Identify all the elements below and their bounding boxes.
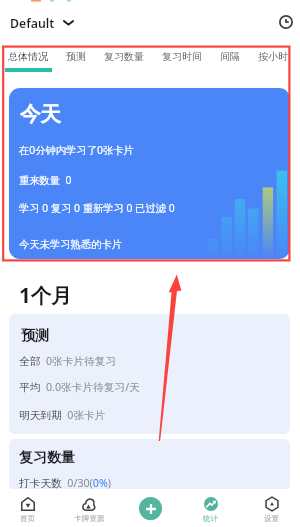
button[interactable]: Default <box>10 14 74 31</box>
staticText: 预测 <box>66 50 86 63</box>
staticText: 卡牌资源 <box>74 514 105 524</box>
button[interactable]: 今天 <box>9 88 290 259</box>
button[interactable]: 按小时分 <box>249 48 299 65</box>
staticText: 复习数量 <box>19 449 75 467</box>
button[interactable]: 统计 <box>182 491 240 525</box>
staticText: 间隔 <box>220 50 240 63</box>
staticText: 统计 <box>203 514 219 524</box>
staticText: Default <box>10 15 55 32</box>
staticText: 明天到期 0张卡片 <box>19 408 106 423</box>
button[interactable]: 首页 <box>0 491 57 525</box>
button[interactable]: 间隔 <box>211 48 249 65</box>
staticText: 重来数量 0 <box>19 173 72 187</box>
staticText: 全部 0张卡片待复习 <box>19 354 117 369</box>
button[interactable]: 预测 <box>9 314 290 434</box>
staticText: 在0分钟内学习了0张卡片 <box>19 143 134 157</box>
button[interactable]: 卡牌资源 <box>60 491 118 525</box>
staticText: 总体情况 <box>8 50 48 63</box>
staticText: 首页 <box>20 514 36 524</box>
staticText: 今天未学习熟悉的卡片 <box>19 238 122 251</box>
button[interactable]: History <box>275 11 297 33</box>
staticText: 复习数量 <box>104 50 144 63</box>
button[interactable]: 总体情况 <box>0 48 57 65</box>
button[interactable]: 复习数量 <box>9 439 290 491</box>
button[interactable]: 设置 <box>243 491 300 525</box>
staticText: 预测 <box>21 327 49 345</box>
button[interactable]: 预测 <box>57 48 95 65</box>
staticText: 复习时间 <box>162 50 202 63</box>
staticText: 平均 0.0张卡片待复习/天 <box>19 380 140 395</box>
staticText: 学习 0 复习 0 重新学习 0 已过滤 0 <box>19 201 175 215</box>
staticText: 打卡天数 0/30(0%) <box>19 476 112 491</box>
staticText: 设置 <box>264 514 280 524</box>
staticText: 按小时分 <box>258 50 290 63</box>
staticText: 1个月 <box>19 281 72 309</box>
button[interactable]: Add <box>139 497 162 520</box>
button[interactable]: 复习数量 <box>95 48 153 65</box>
staticText: 今天 <box>20 101 61 127</box>
button[interactable]: 复习时间 <box>153 48 211 65</box>
